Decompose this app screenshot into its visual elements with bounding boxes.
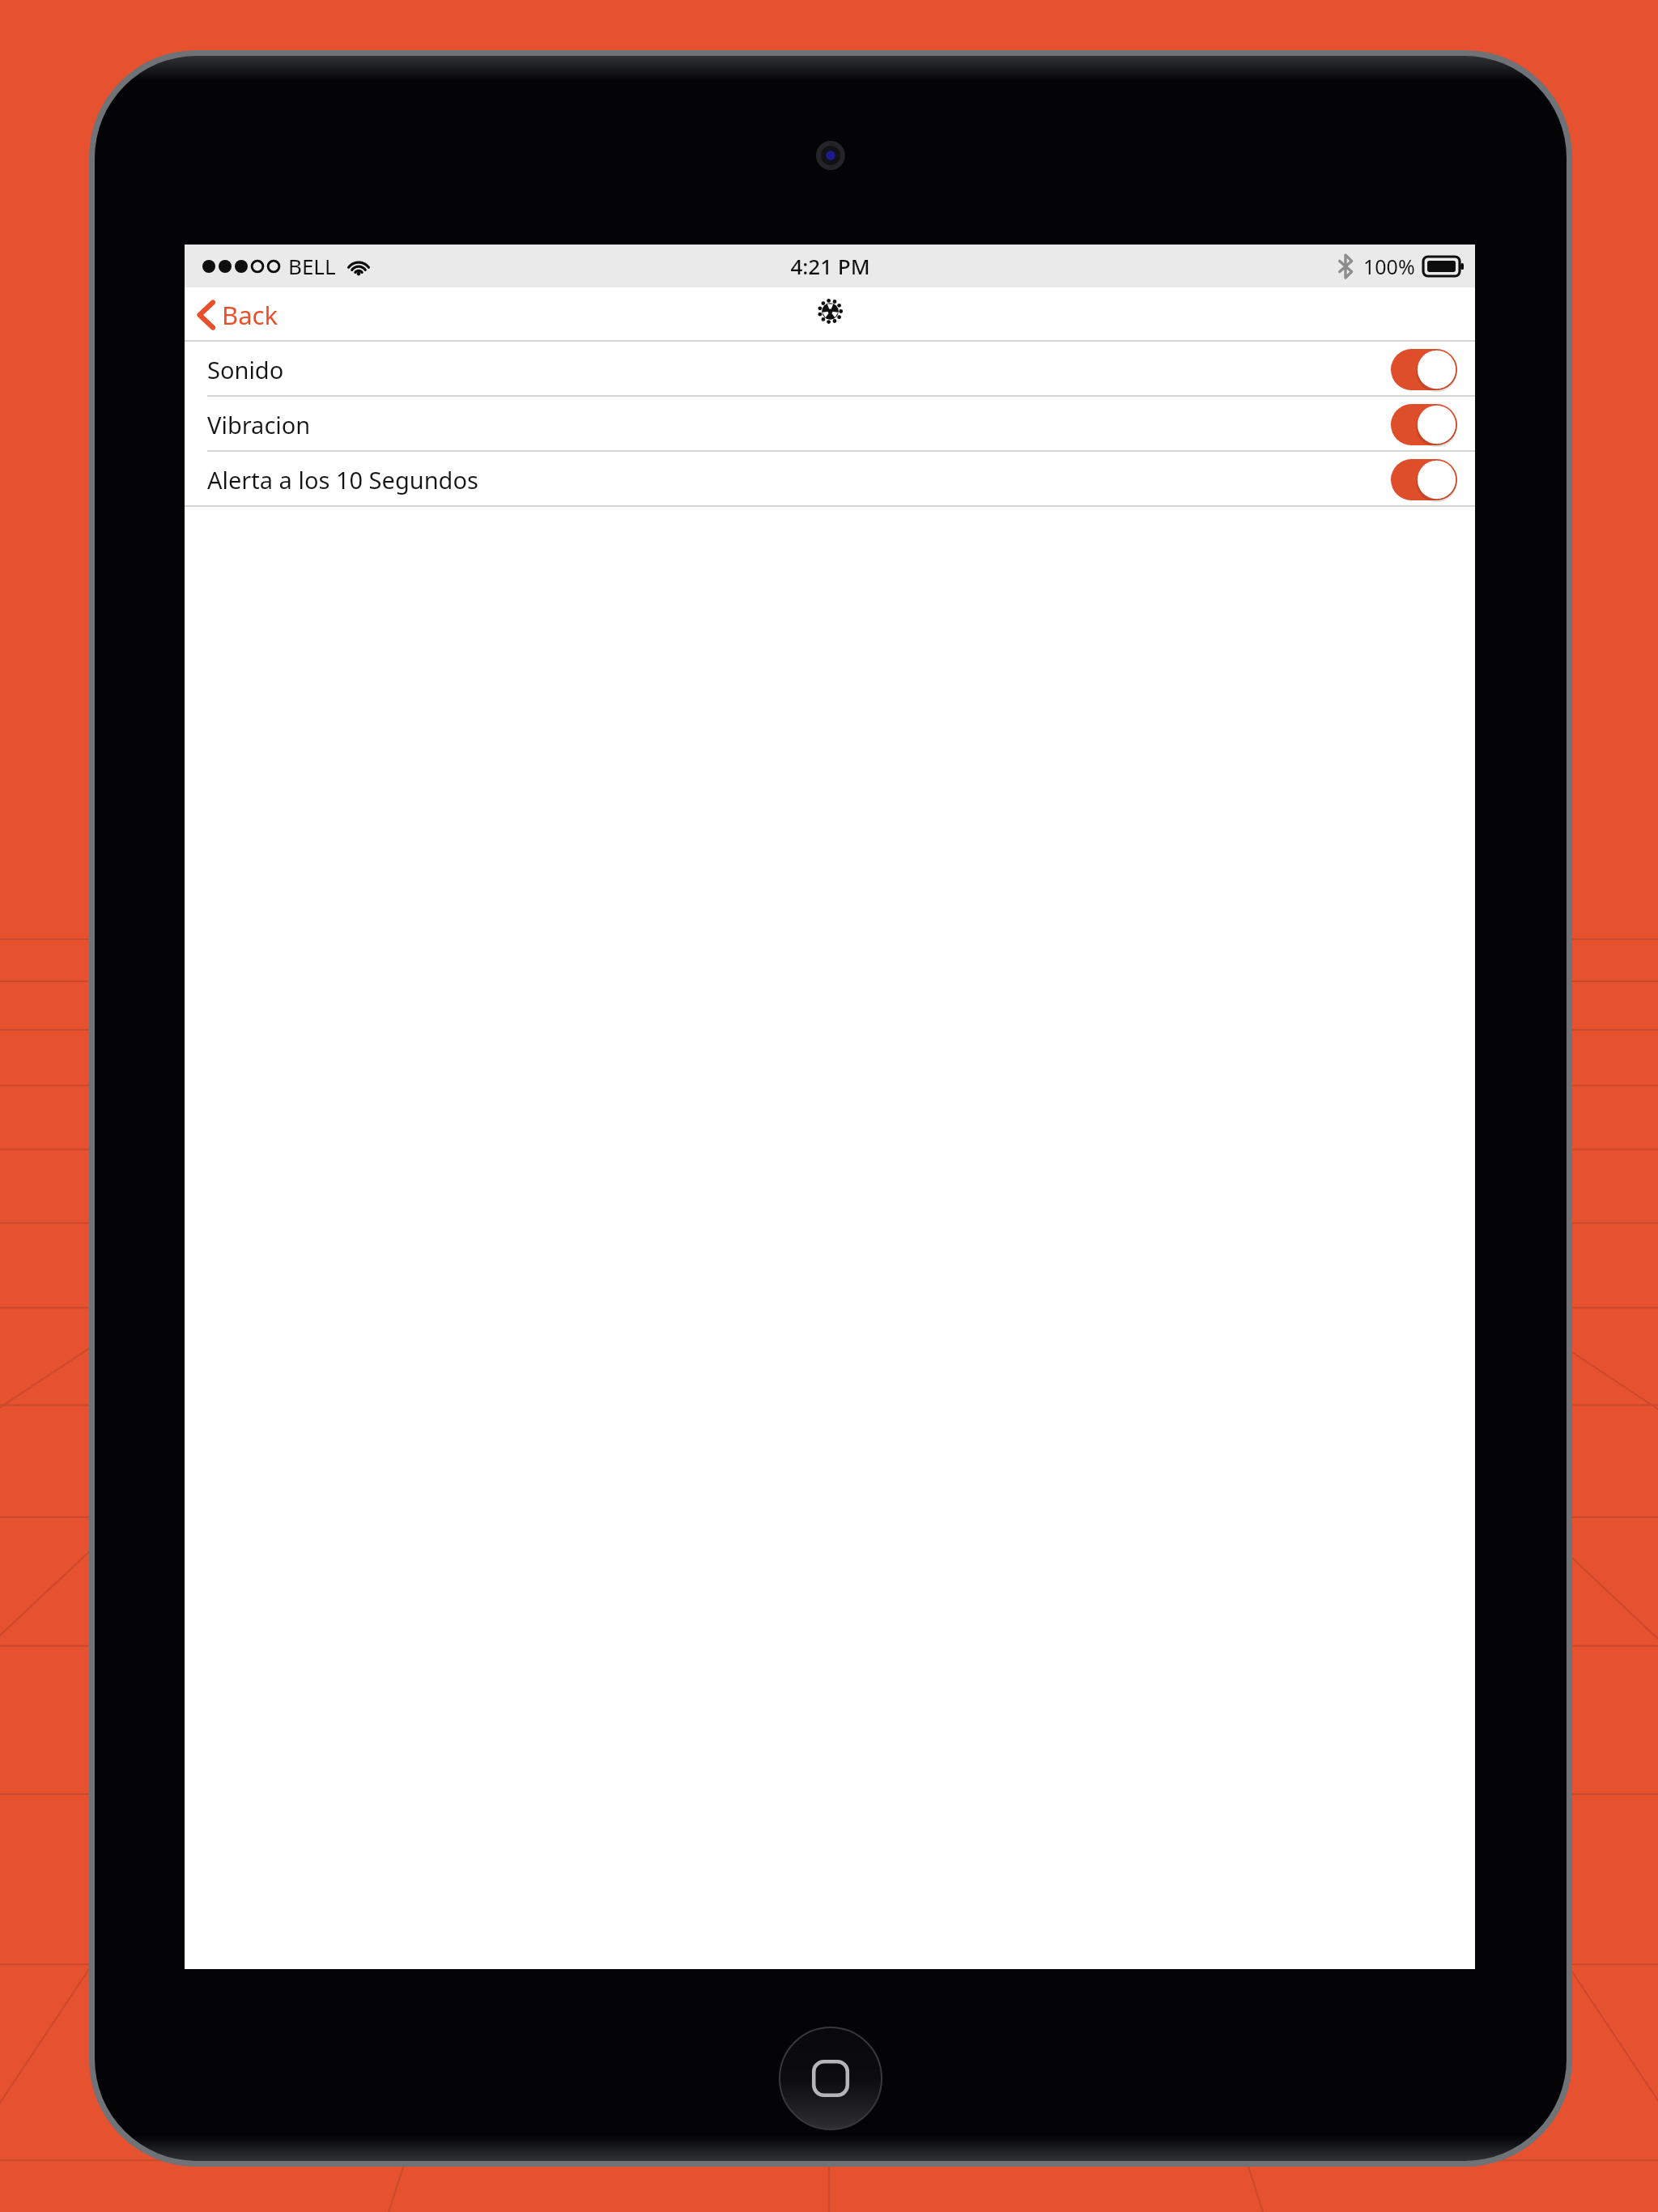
button[interactable]: Back — [189, 291, 286, 338]
staticText: 100% — [1363, 253, 1415, 280]
staticText: 4:21 PM — [790, 252, 870, 280]
button[interactable]: Alerta a los 10 Segundos — [185, 452, 1475, 507]
button[interactable]: Sonido switch, on — [1391, 349, 1457, 390]
staticText: Back — [222, 298, 278, 332]
button[interactable]: Vibracion switch, on — [1391, 404, 1457, 445]
staticText: Alerta a los 10 Segundos — [207, 464, 478, 496]
button[interactable]: Alerta a los 10 Segundos switch, on — [1391, 459, 1457, 500]
button[interactable]: Vibracion — [185, 397, 1475, 452]
staticText: Vibracion — [207, 409, 311, 440]
staticText: BELL — [288, 252, 336, 280]
button[interactable]: Sonido — [185, 342, 1475, 397]
button[interactable]: Settings — [813, 294, 848, 329]
staticText: Sonido — [207, 354, 284, 385]
